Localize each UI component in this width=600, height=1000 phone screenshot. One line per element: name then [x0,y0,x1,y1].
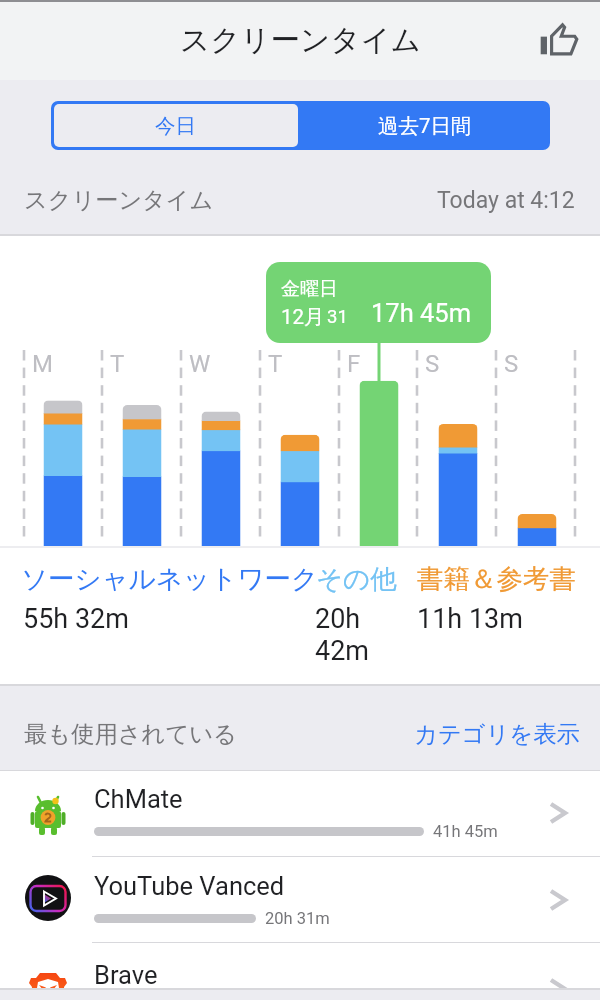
staticText: 今日 [155,113,196,139]
button[interactable]: ChMate [0,771,600,857]
button[interactable]: 今日 [51,101,300,150]
staticText: 20h 31m [265,909,330,928]
staticText: T [268,350,283,378]
staticText: Today at 4:12 [437,187,575,214]
button[interactable]: Brave [0,942,600,1000]
staticText: 55h 32m [23,603,129,635]
staticText: 12月 [281,304,325,330]
button[interactable]: Like [530,10,590,70]
staticText: 最も使用されている [24,720,237,749]
staticText: YouTube Vanced [94,871,285,901]
staticText: T [110,350,125,378]
staticText: ChMate [94,784,183,814]
staticText: カテゴリを表示 [414,720,580,749]
other: Details [546,799,574,827]
button[interactable]: カテゴリを表示 [414,720,580,749]
staticText: F [347,350,361,378]
staticText: 41h 45m [433,822,498,841]
staticText: スクリーンタイム [180,22,421,59]
staticText: 過去7日間 [378,113,472,139]
staticText: スクリーンタイム [24,186,214,215]
staticText: 11h 13m [417,603,523,635]
staticText: ソーシャルネットワーク [21,562,319,595]
staticText: 金曜日 [281,277,338,301]
staticText: M [32,350,53,378]
button[interactable]: 過去7日間 [300,101,550,150]
staticText: 31 [327,306,348,328]
staticText: Brave [94,960,158,990]
other: Details [546,886,574,914]
staticText: その他 [316,562,397,595]
other: Details [546,975,574,1000]
staticText: S [504,350,519,378]
staticText: 書籍＆参考書 [417,562,576,595]
staticText: S [425,350,440,378]
staticText: W [189,350,211,378]
staticText: 20h 42m [315,603,391,667]
staticText: 17h 45m [371,298,472,328]
button[interactable]: YouTube Vanced [0,856,600,942]
